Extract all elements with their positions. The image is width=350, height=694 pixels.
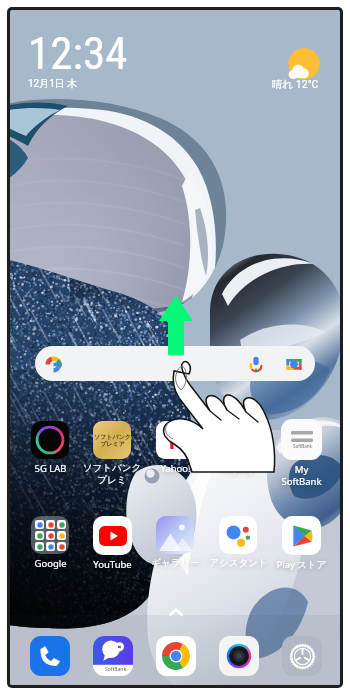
button[interactable]: Phone xyxy=(30,636,70,676)
staticText: Y! xyxy=(165,425,185,455)
button[interactable]: YouTube xyxy=(81,516,143,571)
other: Chrome xyxy=(156,636,196,676)
button[interactable]: SoftBank xyxy=(270,419,332,488)
staticText: ソフトバンク プレミア xyxy=(94,433,131,448)
staticText: Google xyxy=(34,557,67,570)
button[interactable]: アシスタント xyxy=(207,516,269,569)
other: Settings xyxy=(282,636,322,676)
staticText: アシスタント xyxy=(209,557,268,569)
staticText: Play ストア xyxy=(276,558,327,571)
staticText: 5G LAB xyxy=(34,462,67,475)
staticText: 晴れ 12°C xyxy=(272,78,319,91)
staticText: Yahoo! xyxy=(160,462,191,475)
button[interactable]: Settings xyxy=(282,636,322,676)
button[interactable]: SoftBank Messages xyxy=(93,636,133,676)
staticText: PayPay xyxy=(222,462,254,475)
button[interactable]: PayPay xyxy=(207,421,269,475)
button[interactable]: ギャラリー xyxy=(144,516,206,569)
staticText: My SoftBank xyxy=(281,463,322,488)
other: Voice search xyxy=(247,355,265,373)
other: Google Lens xyxy=(285,355,303,373)
button[interactable]: ソフトバンク プレミア xyxy=(81,421,143,485)
button[interactable]: Voice search xyxy=(35,346,315,381)
other: SoftBank Messages xyxy=(93,636,133,676)
button[interactable]: Open app drawer xyxy=(169,606,183,620)
button[interactable]: 晴れ 12°C xyxy=(268,29,340,105)
button[interactable]: Play ストア xyxy=(270,516,332,571)
staticText: SoftBank xyxy=(105,666,127,673)
button[interactable]: 5G LAB xyxy=(19,421,81,475)
other: Camera xyxy=(219,636,259,676)
button[interactable]: Camera xyxy=(219,636,259,676)
other: Phone xyxy=(30,636,70,676)
staticText: 12:34 xyxy=(28,27,128,80)
button[interactable]: Chrome xyxy=(156,636,196,676)
button[interactable]: Google xyxy=(19,516,81,570)
staticText: YouTube xyxy=(93,558,132,571)
staticText: ソフトバンクプレミ xyxy=(81,462,143,485)
button[interactable]: Y! xyxy=(144,421,206,475)
staticText: 12月1日 木 xyxy=(28,77,78,90)
button[interactable]: 12:34 xyxy=(26,27,146,105)
staticText: SoftBank xyxy=(293,443,312,449)
staticText: ギャラリー xyxy=(151,557,200,569)
